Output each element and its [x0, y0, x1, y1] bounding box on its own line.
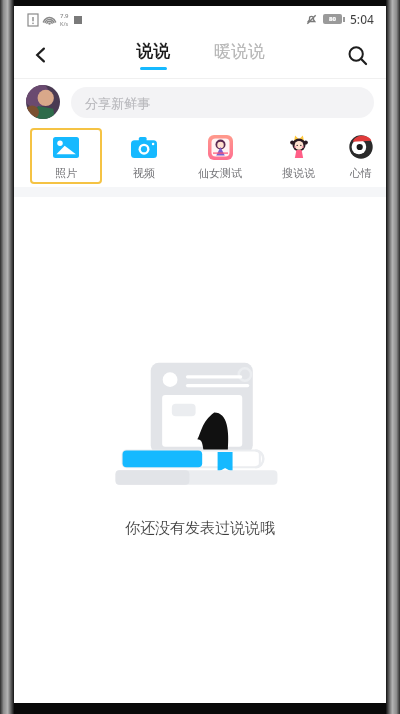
- button[interactable]: 心情: [336, 133, 386, 180]
- staticText: 你还没有发表过说说哦: [125, 519, 275, 538]
- staticText: 7.9: [60, 12, 69, 20]
- staticText: 仙女测试: [198, 166, 242, 180]
- button[interactable]: 仙女测试: [180, 133, 260, 180]
- button[interactable]: Profile: [26, 85, 60, 119]
- button[interactable]: 照片: [30, 128, 102, 184]
- button[interactable]: Search: [336, 34, 378, 76]
- button[interactable]: 说说: [126, 41, 180, 70]
- button[interactable]: 视频: [108, 133, 180, 180]
- staticText: 暖说说: [214, 41, 265, 62]
- staticText: 照片: [55, 166, 77, 180]
- staticText: 80: [329, 15, 336, 23]
- staticText: 分享新鲜事: [85, 95, 150, 111]
- button[interactable]: Back: [20, 34, 62, 76]
- staticText: K/s: [60, 20, 69, 27]
- staticText: 心情: [350, 166, 372, 180]
- staticText: 视频: [133, 166, 155, 180]
- button[interactable]: 分享新鲜事: [71, 87, 374, 118]
- staticText: 搜说说: [282, 166, 315, 180]
- staticText: 5:04: [350, 11, 374, 27]
- staticText: 说说: [136, 41, 170, 62]
- button[interactable]: 暖说说: [204, 41, 275, 70]
- button[interactable]: 搜说说: [260, 133, 336, 180]
